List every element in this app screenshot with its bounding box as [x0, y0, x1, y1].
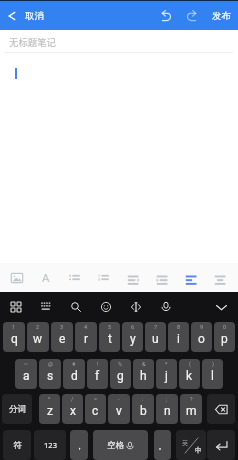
button[interactable]: 3 — [51, 322, 73, 352]
button[interactable]: Emoji — [91, 292, 121, 322]
staticText: 3 — [60, 324, 64, 330]
button[interactable]: 0 — [214, 322, 235, 352]
staticText: * — [165, 361, 168, 367]
staticText: 7 — [154, 324, 158, 330]
staticText: y — [130, 332, 136, 346]
button[interactable] — [0, 53, 238, 263]
button[interactable]: 4 — [75, 322, 97, 352]
staticText: = — [94, 396, 98, 402]
button[interactable]: Decrease indent — [118, 263, 147, 292]
button[interactable]: 无标题笔记 — [0, 30, 238, 52]
staticText: @ — [48, 361, 53, 367]
staticText: 6 — [131, 324, 135, 330]
button[interactable]: # — [63, 359, 85, 389]
staticText: - — [118, 396, 120, 402]
button[interactable]: - — [108, 394, 130, 424]
button[interactable]: Numbered list — [89, 263, 118, 292]
button[interactable]: 8 — [168, 322, 189, 352]
staticText: 1 — [12, 324, 16, 330]
button[interactable]: * — [156, 359, 177, 389]
button[interactable]: Apps — [1, 292, 31, 322]
staticText: c — [92, 404, 99, 418]
staticText: q — [11, 332, 18, 346]
staticText: x — [70, 404, 76, 418]
staticText: ， — [75, 440, 84, 451]
staticText: 2 — [36, 324, 40, 330]
button[interactable]: : — [132, 394, 154, 424]
button[interactable]: Hide keyboard — [206, 292, 236, 322]
button[interactable]: Search — [61, 292, 91, 322]
button[interactable]: Font style — [31, 263, 60, 292]
staticText: v — [116, 404, 122, 418]
staticText: h — [140, 369, 147, 383]
button[interactable]: 分词 — [2, 394, 32, 424]
staticText: r — [84, 332, 89, 346]
button[interactable]: 9 — [191, 322, 212, 352]
staticText: g — [117, 369, 124, 383]
staticText: f — [95, 369, 100, 383]
button[interactable]: 123 — [34, 430, 66, 460]
button[interactable]: ^ — [39, 394, 60, 424]
button[interactable]: & — [133, 359, 154, 389]
button[interactable]: 。 — [154, 430, 171, 460]
staticText: a — [23, 369, 30, 383]
button[interactable]: Keyboard layout — [31, 292, 61, 322]
staticText: i — [177, 332, 180, 346]
staticText: ~ — [24, 361, 28, 367]
button[interactable]: Enter — [207, 430, 235, 460]
button[interactable]: 6 — [122, 322, 143, 352]
button[interactable]: ? — [180, 394, 202, 424]
button[interactable]: Clipboard — [121, 292, 151, 322]
button[interactable]: 取消 — [0, 1, 238, 30]
staticText: ( — [189, 361, 191, 367]
button[interactable]: Bulleted list — [60, 263, 89, 292]
staticText: n — [164, 404, 171, 418]
button[interactable]: 空格 — [93, 430, 148, 460]
button[interactable]: 符 — [3, 430, 31, 460]
button[interactable]: Redo — [181, 5, 203, 27]
staticText: b — [140, 404, 147, 418]
staticText: ? — [190, 396, 193, 402]
button[interactable]: Backspace — [207, 394, 235, 424]
staticText: 。 — [158, 440, 167, 451]
button[interactable]: Align center — [205, 263, 234, 292]
staticText: ; — [166, 396, 168, 402]
staticText: 9 — [200, 324, 204, 330]
button[interactable]: % — [110, 359, 131, 389]
staticText: 中 — [195, 445, 202, 454]
staticText: 发布 — [212, 10, 231, 22]
button[interactable]: 发布 — [205, 1, 238, 30]
button[interactable]: 7 — [145, 322, 166, 352]
staticText: ) — [212, 361, 214, 367]
staticText: o — [198, 332, 205, 346]
staticText: s — [47, 369, 54, 383]
button[interactable]: ， — [70, 430, 88, 460]
button[interactable]: Increase indent — [147, 263, 176, 292]
staticText: 8 — [177, 324, 181, 330]
button[interactable]: 2 — [27, 322, 49, 352]
button[interactable]: = — [85, 394, 106, 424]
button[interactable]: Voice input — [151, 292, 181, 322]
staticText: 5 — [108, 324, 112, 330]
staticText: 符 — [13, 440, 22, 451]
button[interactable]: Switch input language — [176, 430, 206, 460]
staticText: m — [186, 404, 197, 418]
button[interactable]: ( — [179, 359, 200, 389]
button[interactable]: 5 — [99, 322, 120, 352]
button[interactable]: / — [62, 394, 83, 424]
button[interactable]: ; — [156, 394, 178, 424]
button[interactable]: @ — [39, 359, 61, 389]
button[interactable]: Insert image — [2, 263, 31, 292]
staticText: e — [59, 332, 66, 346]
staticText: p — [221, 332, 228, 346]
button[interactable]: 1 — [3, 322, 25, 352]
button[interactable]: ! — [87, 359, 108, 389]
button[interactable]: ) — [202, 359, 223, 389]
button[interactable]: Align left — [176, 263, 205, 292]
button[interactable]: Undo — [155, 5, 177, 27]
staticText: ^ — [48, 396, 51, 402]
staticText: A — [42, 271, 50, 284]
button[interactable]: ~ — [15, 359, 37, 389]
staticText: w — [33, 332, 43, 346]
staticText: # — [72, 361, 76, 367]
